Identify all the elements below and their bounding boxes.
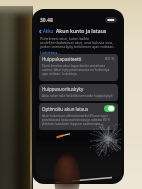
staticText: Akun kulumisen vähentämiseksi iPhone opp…	[42, 114, 115, 126]
staticText: Puhelimesi akut, kuten kaikki uudelleenl…	[40, 36, 117, 50]
staticText: 30.48	[40, 17, 53, 23]
staticText: Optimoitu akun lataus	[42, 106, 89, 112]
button[interactable]: Back to Akku	[38, 28, 54, 34]
button[interactable]: Huippukapasiteetti	[39, 54, 118, 81]
staticText: Tämä ilmoitus akun kapasiteetin vertailu…	[42, 64, 115, 76]
staticText: 88 %	[105, 56, 115, 62]
staticText: Akun kunto ja lataus	[56, 28, 107, 35]
button[interactable]: Optimoitu akun lataus toggle	[104, 105, 115, 112]
button[interactable]: Optimoitu akun lataus	[39, 103, 118, 130]
button[interactable]: Huippusuorituskyky	[39, 84, 118, 101]
staticText: Huippukapasiteetti	[42, 56, 82, 62]
staticText: Akku	[43, 28, 54, 34]
staticText: Huippusuorituskyky	[42, 86, 84, 92]
staticText: Akku tukee tällä hetkellä normaalia huip…	[42, 94, 113, 98]
staticText: Lisätietoja...	[40, 50, 61, 55]
